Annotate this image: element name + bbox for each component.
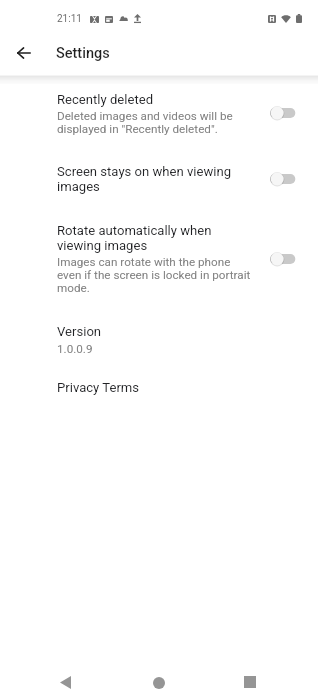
button[interactable]: Privacy Terms xyxy=(0,380,318,395)
button[interactable]: Back xyxy=(44,660,89,700)
button[interactable]: Screen stays on when viewing images xyxy=(0,164,318,194)
staticText: Privacy Terms xyxy=(57,380,140,395)
button[interactable]: Toggle xyxy=(270,103,300,123)
staticText: Rotate automatically when viewing images xyxy=(57,223,212,253)
staticText: Settings xyxy=(56,45,110,62)
staticText: Images can rotate with the phone even if… xyxy=(57,255,251,295)
button[interactable]: Home xyxy=(136,660,181,700)
button[interactable]: Back xyxy=(8,37,40,69)
staticText: Version xyxy=(57,324,102,339)
staticText: Deleted images and videos will be displa… xyxy=(57,109,233,136)
button[interactable]: Recent apps xyxy=(228,660,273,700)
staticText: 21:11 xyxy=(57,13,82,25)
staticText: Recently deleted xyxy=(57,92,154,107)
button[interactable]: Toggle xyxy=(270,169,300,189)
button[interactable]: Rotate automatically when viewing images xyxy=(0,223,318,295)
button[interactable]: Toggle xyxy=(270,249,300,269)
button[interactable]: Recently deleted xyxy=(0,92,318,136)
button[interactable]: Version xyxy=(0,324,318,356)
staticText: Screen stays on when viewing images xyxy=(57,164,232,194)
staticText: 1.0.0.9 xyxy=(57,342,93,356)
